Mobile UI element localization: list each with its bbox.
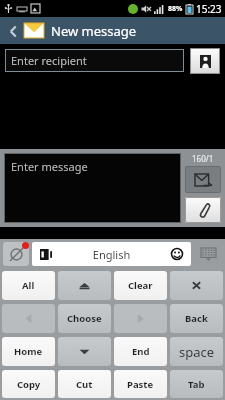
- staticText: Enter recipient: [11, 53, 87, 68]
- button[interactable]: Paste: [114, 370, 167, 398]
- button[interactable]: Tab: [170, 370, 223, 398]
- button[interactable]: Enter message: [4, 153, 181, 223]
- staticText: 15:23: [196, 2, 222, 16]
- staticText: Home: [14, 345, 43, 358]
- button[interactable]: Back: [5, 20, 21, 42]
- button[interactable]: Cut: [58, 370, 111, 398]
- staticText: 88%: [168, 4, 183, 14]
- staticText: 160/1: [192, 153, 214, 164]
- staticText: Choose: [67, 312, 102, 325]
- staticText: Back: [185, 312, 208, 325]
- button[interactable]: CROSS: [170, 271, 223, 300]
- staticText: English: [52, 247, 171, 262]
- button[interactable]: UP: [58, 271, 111, 300]
- button[interactable]: Hide keyboard: [194, 242, 222, 266]
- button[interactable]: Contacts: [190, 48, 220, 74]
- button[interactable]: Choose: [58, 304, 111, 333]
- staticText: Cut: [76, 378, 93, 391]
- button[interactable]: Home: [2, 337, 55, 366]
- staticText: All: [22, 279, 35, 292]
- button[interactable]: Voice input: [3, 242, 29, 266]
- staticText: Tab: [188, 378, 205, 391]
- staticText: Enter message: [11, 159, 88, 174]
- staticText: Clear: [128, 279, 153, 292]
- button[interactable]: Send: [185, 166, 221, 193]
- button[interactable]: Enter recipient: [5, 49, 184, 72]
- staticText: New message: [51, 22, 137, 40]
- button[interactable]: All: [2, 271, 55, 300]
- button[interactable]: English: [32, 242, 191, 266]
- button[interactable]: DOWN: [58, 337, 111, 366]
- staticText: End: [132, 345, 150, 358]
- button[interactable]: Copy: [2, 370, 55, 398]
- button[interactable]: Back: [170, 304, 223, 333]
- staticText: Copy: [17, 378, 41, 391]
- staticText: space: [179, 343, 215, 361]
- button[interactable]: space: [170, 337, 223, 366]
- button[interactable]: Attach: [185, 197, 221, 223]
- button[interactable]: Clear: [114, 271, 167, 300]
- staticText: Paste: [127, 378, 154, 391]
- button[interactable]: End: [114, 337, 167, 366]
